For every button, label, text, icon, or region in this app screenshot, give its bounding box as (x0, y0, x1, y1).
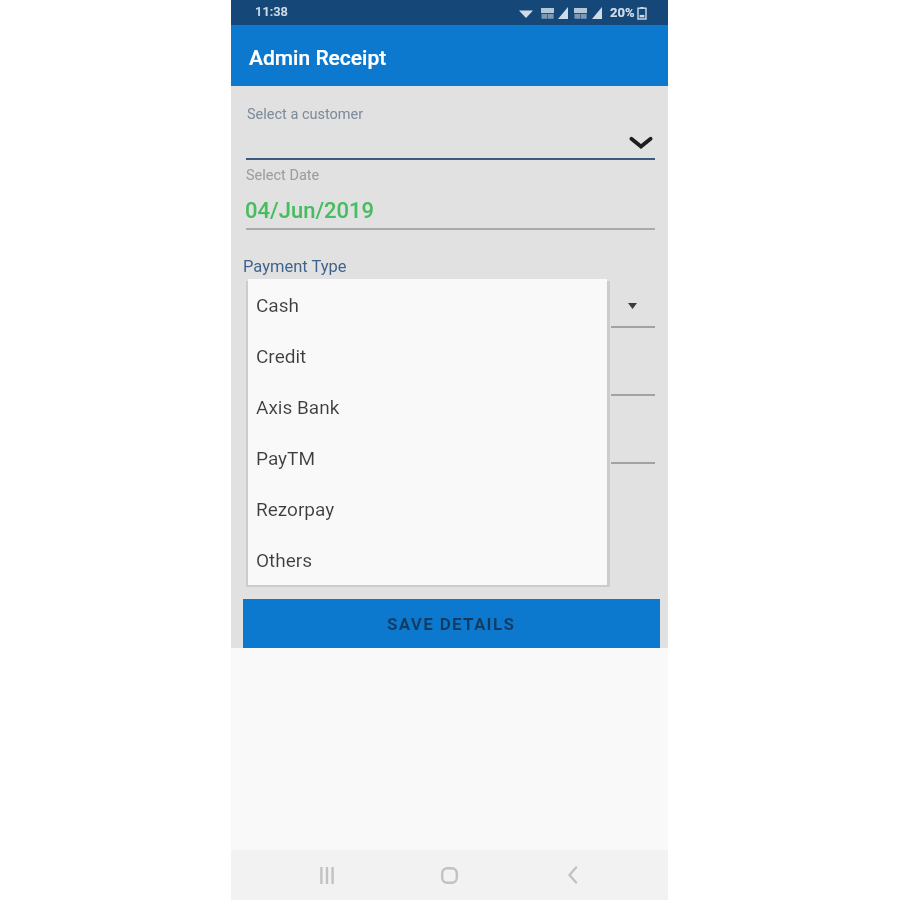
staticText: Axis Bank (256, 396, 340, 418)
button[interactable]: Cash (248, 279, 607, 330)
button[interactable]: Rezorpay (248, 483, 607, 534)
staticText: Payment Type (243, 257, 347, 276)
button[interactable]: PayTM (248, 432, 607, 483)
staticText: Credit (256, 345, 307, 367)
button[interactable]: SAVE DETAILS (243, 599, 660, 648)
button[interactable]: Open customer list (628, 134, 654, 151)
staticText: 20% (610, 5, 635, 20)
staticText: Others (256, 549, 313, 571)
button[interactable]: Back (549, 851, 597, 899)
staticText: Cash (256, 294, 299, 316)
button[interactable]: Axis Bank (248, 381, 607, 432)
staticText: 04/Jun/2019 (245, 198, 375, 224)
staticText: Select Date (246, 167, 320, 184)
button[interactable]: Admin Receipt (231, 25, 668, 86)
button[interactable]: Others (248, 534, 607, 585)
staticText: Select a customer (247, 106, 364, 123)
staticText: Admin Receipt (249, 46, 387, 71)
staticText: PayTM (256, 447, 315, 469)
staticText: 11:38 (255, 4, 289, 19)
button[interactable]: Credit (248, 330, 607, 381)
staticText: Rezorpay (256, 498, 335, 520)
staticText: SAVE DETAILS (387, 614, 516, 634)
button[interactable]: Recent apps (303, 851, 351, 899)
button[interactable]: Home (425, 851, 473, 899)
